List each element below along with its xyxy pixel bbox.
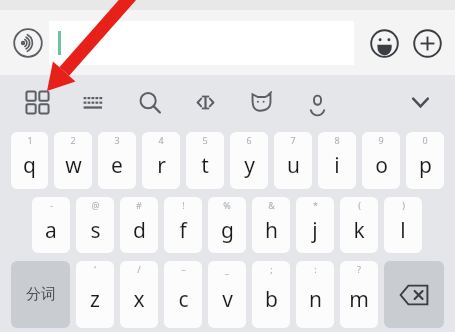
staticText: h [265,216,278,245]
button[interactable]: ( [340,197,378,253]
staticText: v [222,285,233,314]
button[interactable]: ) [384,197,422,253]
button[interactable]: _ [208,261,246,328]
button[interactable] [49,21,354,65]
staticText: 9 [378,134,384,146]
button[interactable]: Search [132,85,166,119]
staticText: t [201,151,209,180]
staticText: 3 [114,134,120,146]
staticText: 7 [290,134,296,146]
button[interactable]: * [296,197,334,253]
staticText: j [312,216,318,245]
staticText: _ [225,263,229,275]
button[interactable]: Stickers [244,85,278,119]
staticText: & [268,199,275,211]
staticText: – [181,263,186,275]
staticText: p [419,151,432,180]
staticText: % [223,199,231,211]
staticText: g [221,216,234,245]
staticText: ; [270,263,273,275]
button[interactable]: 2 [54,132,92,189]
staticText: x [133,285,145,314]
staticText: 4 [158,134,164,146]
staticText: 6 [246,134,252,146]
button[interactable]: 0 [406,132,444,189]
button[interactable]: & [252,197,290,253]
button[interactable]: ‘ [76,261,114,328]
staticText: - [50,199,53,211]
staticText: ) [402,199,405,211]
staticText: n [309,285,322,314]
button[interactable]: 4 [142,132,180,189]
staticText: 分词 [26,285,56,304]
staticText: f [179,216,187,245]
button[interactable]: 9 [362,132,400,189]
button[interactable]: Backspace [384,261,444,328]
button[interactable]: - [32,197,70,253]
staticText: 2 [70,134,76,146]
button[interactable]: Keyboard layout [76,85,110,119]
staticText: q [23,151,36,180]
button[interactable]: / [120,261,158,328]
button[interactable]: 3 [98,132,136,189]
button[interactable]: @ [76,197,114,253]
staticText: b [265,285,278,314]
staticText: r [157,151,166,180]
button[interactable]: ! [164,197,202,253]
button[interactable]: : [296,261,334,328]
staticText: ( [358,199,361,211]
staticText: a [45,216,57,245]
staticText: ! [182,199,185,211]
button[interactable]: 7 [274,132,312,189]
staticText: * [313,199,318,211]
button[interactable]: 8 [318,132,356,189]
staticText: 8 [334,134,340,146]
button[interactable]: Emoji [364,23,404,63]
staticText: : [314,263,317,275]
staticText: y [244,151,255,180]
button[interactable]: ? [340,261,378,328]
staticText: ‘ [94,263,96,275]
staticText: k [353,216,365,245]
staticText: s [90,216,101,245]
button[interactable]: % [208,197,246,253]
button[interactable]: Grid menu [20,85,54,119]
staticText: # [136,199,142,211]
button[interactable]: ; [252,261,290,328]
button[interactable]: 5 [186,132,224,189]
staticText: 5 [202,134,208,146]
staticText: e [111,151,123,180]
button[interactable]: 1 [11,132,48,189]
button[interactable]: 分词 [11,261,70,328]
staticText: i [334,151,340,180]
button[interactable]: # [120,197,158,253]
button[interactable]: Add [407,23,447,63]
staticText: ? [357,263,361,275]
staticText: c [178,285,189,314]
staticText: w [65,151,82,180]
staticText: z [90,285,100,314]
staticText: m [349,285,369,314]
staticText: d [133,216,146,245]
staticText: 0 [422,134,428,146]
button[interactable]: Move cursor [188,85,222,119]
button[interactable]: Collapse keyboard [403,85,437,119]
staticText: o [375,151,388,180]
staticText: / [137,263,141,275]
staticText: u [287,151,300,180]
button[interactable]: 6 [230,132,268,189]
button[interactable]: – [164,261,202,328]
button[interactable]: Voice input [8,23,48,63]
staticText: 1 [27,134,33,146]
button[interactable]: Voice [300,85,334,119]
staticText: @ [91,199,100,211]
staticText: l [400,216,406,245]
